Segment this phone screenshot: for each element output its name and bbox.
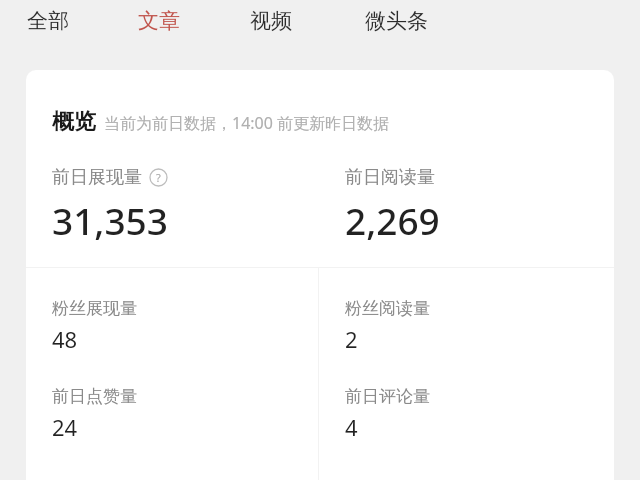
- staticText: 31,353: [52, 195, 168, 245]
- staticText: 前日点赞量: [52, 386, 137, 407]
- button[interactable]: 指标说明: [149, 168, 168, 187]
- staticText: 全部: [27, 8, 69, 34]
- button[interactable]: 前日阅读量: [318, 166, 610, 245]
- button[interactable]: 前日展现量: [26, 166, 318, 245]
- button[interactable]: 粉丝阅读量: [318, 268, 610, 370]
- staticText: 2: [345, 324, 358, 354]
- button[interactable]: 粉丝展现量: [26, 268, 318, 370]
- staticText: 概览: [52, 108, 96, 136]
- staticText: 前日阅读量: [345, 166, 435, 189]
- button[interactable]: 前日点赞量: [26, 370, 318, 466]
- staticText: 4: [345, 412, 358, 442]
- staticText: 48: [52, 324, 78, 354]
- staticText: 2,269: [345, 195, 440, 245]
- staticText: 微头条: [365, 8, 428, 34]
- button[interactable]: 微头条: [363, 4, 430, 38]
- staticText: 粉丝展现量: [52, 298, 137, 319]
- button[interactable]: 全部: [25, 4, 71, 38]
- button[interactable]: 文章: [136, 4, 182, 38]
- button[interactable]: 视频: [248, 4, 294, 38]
- staticText: 当前为前日数据，14:00 前更新昨日数据: [104, 112, 390, 134]
- staticText: 24: [52, 412, 78, 442]
- staticText: 文章: [138, 8, 180, 34]
- staticText: 粉丝阅读量: [345, 298, 430, 319]
- staticText: 前日评论量: [345, 386, 430, 407]
- staticText: 视频: [250, 8, 292, 34]
- staticText: ?: [156, 170, 161, 185]
- button[interactable]: 概览: [52, 108, 390, 136]
- staticText: 前日展现量: [52, 166, 142, 189]
- button[interactable]: 前日评论量: [318, 370, 610, 466]
